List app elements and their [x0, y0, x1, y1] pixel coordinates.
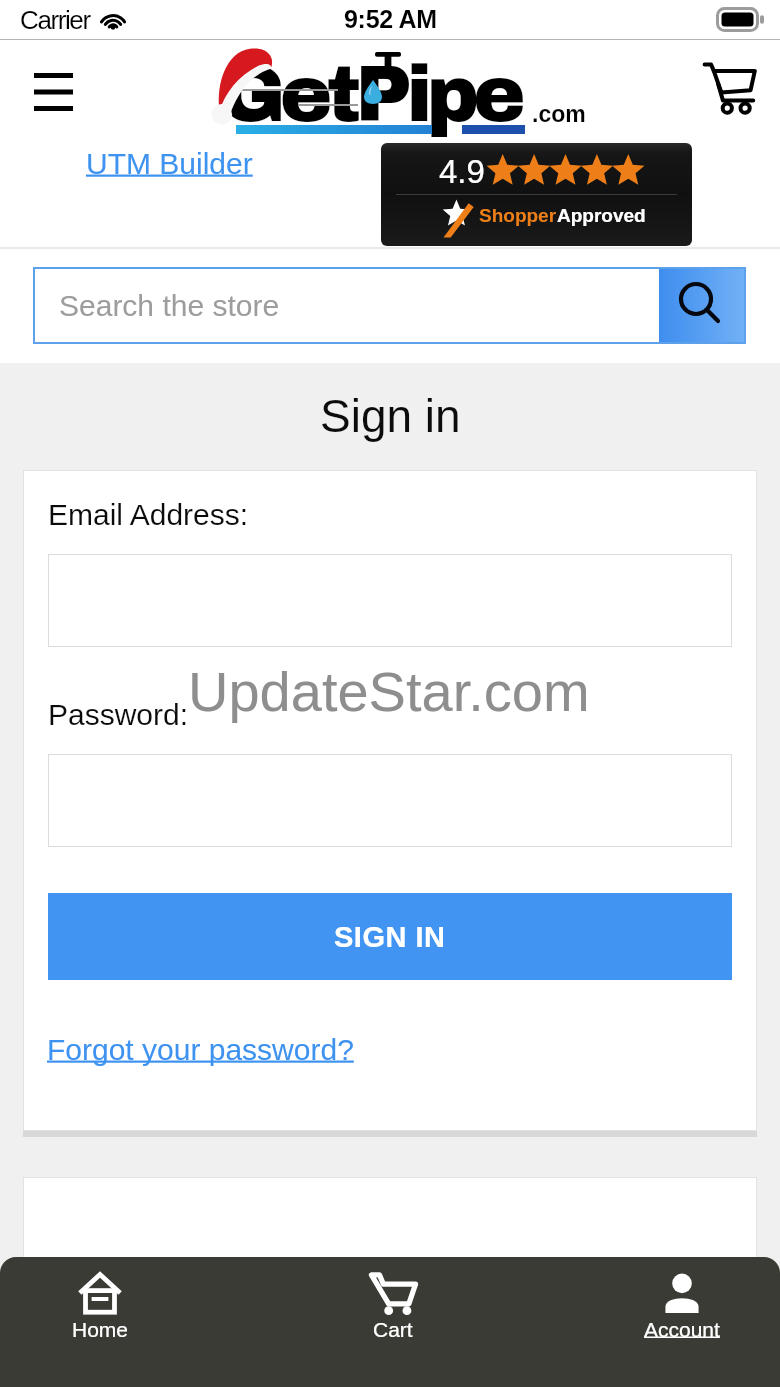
staticText: Email Address: — [48, 498, 249, 532]
staticText: Shopper — [479, 205, 557, 226]
staticText: Approved — [557, 205, 646, 226]
staticText: Carrier — [20, 5, 90, 34]
button[interactable]: UTM Builder — [86, 147, 253, 181]
button[interactable] — [48, 754, 732, 847]
staticText: UTM Builder — [86, 147, 253, 181]
staticText: SIGN IN — [334, 921, 446, 953]
button[interactable]: Search — [659, 267, 746, 344]
button[interactable]: Cart — [313, 1257, 473, 1387]
button[interactable]: SIGN IN — [48, 893, 732, 980]
staticText: UpdateStar.com — [188, 660, 590, 723]
staticText: Search the store — [59, 289, 280, 323]
staticText: Home — [72, 1318, 129, 1341]
staticText: Forgot your password? — [47, 1033, 354, 1067]
button[interactable]: Shopping cart — [694, 50, 766, 122]
button[interactable]: Search the store — [33, 267, 659, 344]
staticText: Password: — [48, 698, 189, 732]
staticText: Account — [644, 1318, 720, 1341]
staticText: 4.9 — [439, 153, 485, 190]
button[interactable] — [48, 554, 732, 647]
staticText: GetPipe — [220, 52, 520, 138]
staticText: .com — [532, 101, 586, 127]
button[interactable]: Account — [602, 1257, 762, 1387]
button[interactable]: Forgot your password? — [47, 1033, 354, 1067]
button[interactable]: Home — [20, 1257, 180, 1387]
button[interactable]: 4.9 — [381, 143, 692, 246]
staticText: Sign in — [320, 390, 461, 441]
button[interactable]: Menu — [8, 50, 98, 134]
staticText: 9:52 AM — [344, 5, 437, 33]
staticText: Cart — [373, 1318, 413, 1341]
